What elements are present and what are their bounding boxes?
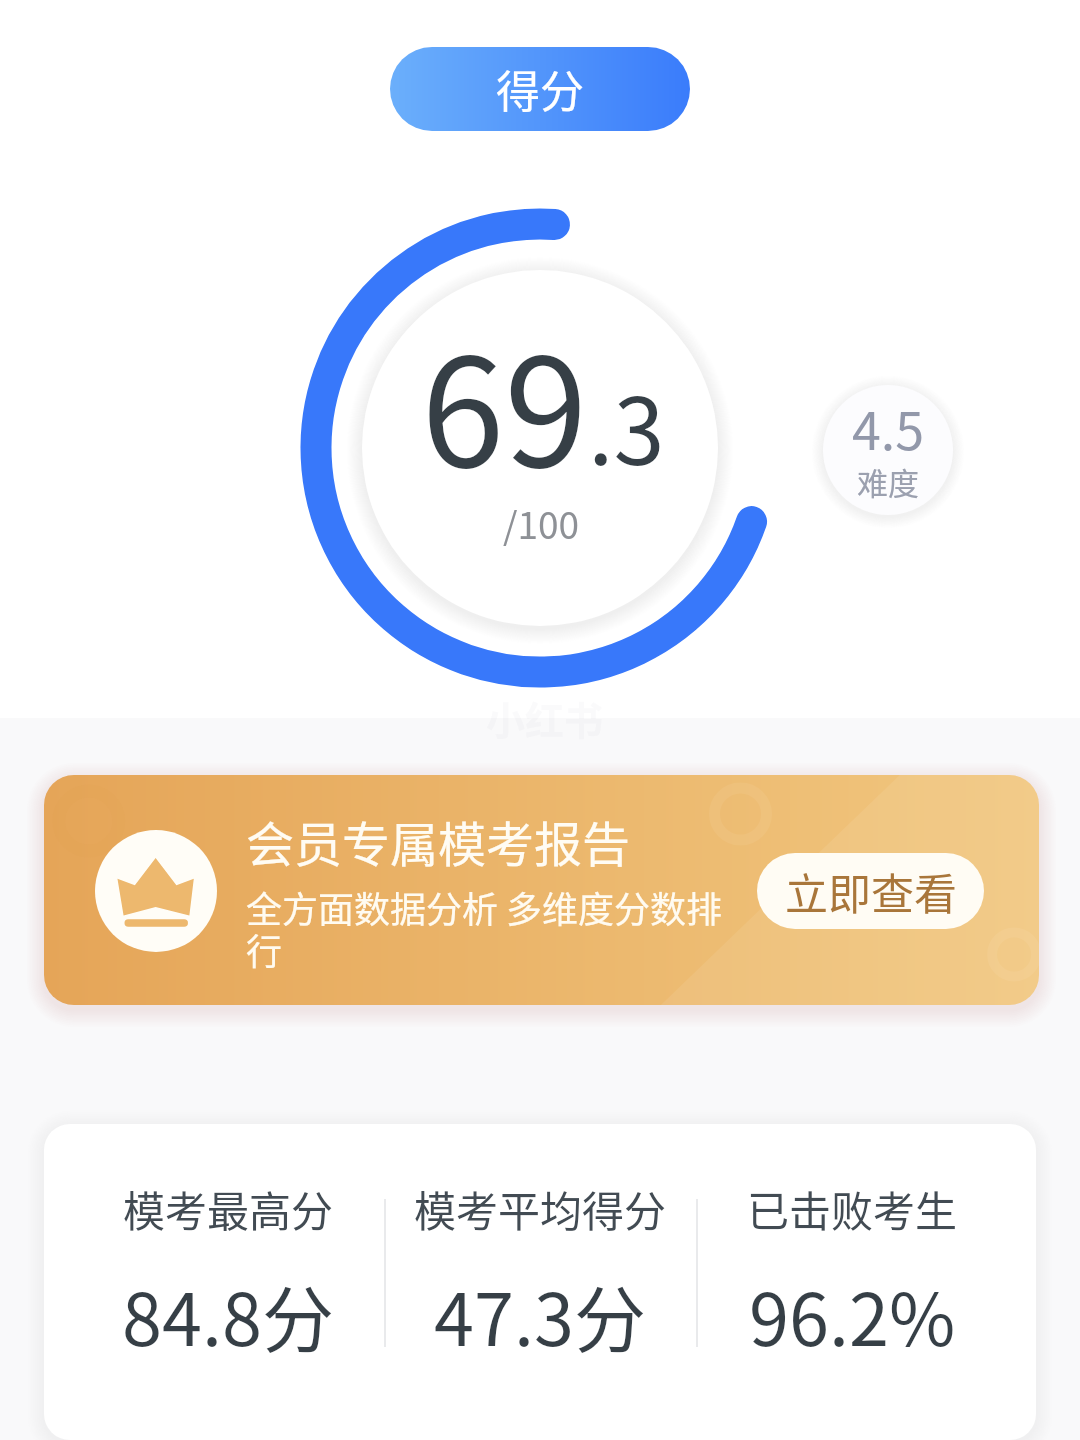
staticText: 已击败考生	[747, 1178, 958, 1239]
button[interactable]: 已击败考生	[696, 1124, 1008, 1440]
staticText: 小红书	[486, 690, 604, 746]
button[interactable]: 模考平均得分	[384, 1124, 696, 1440]
staticText: 全方面数据分析 多维度分数排行	[246, 881, 728, 975]
staticText: 4.5	[852, 390, 925, 465]
staticText: 47.3分	[434, 1262, 646, 1366]
staticText: 84.8分	[122, 1262, 334, 1366]
button[interactable]: 立即查看	[757, 853, 984, 929]
staticText: .3	[588, 358, 665, 491]
staticText: 立即查看	[785, 860, 957, 922]
button[interactable]: 模考最高分	[72, 1124, 384, 1440]
staticText: 会员专属模考报告	[246, 806, 631, 876]
button[interactable]: 难度 4.5	[814, 376, 962, 524]
staticText: 模考平均得分	[414, 1178, 667, 1239]
staticText: 得分	[496, 57, 584, 121]
staticText: 模考最高分	[123, 1178, 334, 1239]
button[interactable]: 得分	[390, 47, 690, 131]
button[interactable]: 会员专属模考报告	[44, 775, 1039, 1005]
staticText: 难度	[857, 459, 919, 504]
staticText: 69	[421, 293, 588, 510]
staticText: 96.2%	[749, 1262, 956, 1366]
staticText: /100	[503, 496, 580, 550]
